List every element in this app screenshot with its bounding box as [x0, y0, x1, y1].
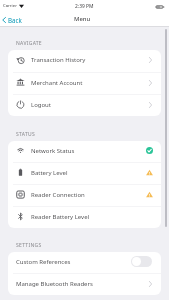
button[interactable]: Reader Battery Level [8, 207, 161, 228]
button[interactable]: Battery Level [8, 163, 161, 184]
staticText: Menu [74, 15, 91, 23]
staticText: Reader Connection [31, 191, 85, 199]
button[interactable]: Back [0, 14, 26, 26]
button[interactable]: Transaction History [8, 50, 161, 72]
button[interactable]: Network Status [8, 141, 161, 162]
staticText: Transaction History [31, 56, 86, 64]
staticText: Battery Level [31, 169, 68, 177]
staticText: Back [8, 16, 22, 24]
staticText: 2:39 PM [75, 3, 94, 10]
staticText: Carrier [3, 3, 17, 9]
staticText: Network Status [31, 147, 75, 155]
staticText: Logout [31, 101, 51, 109]
staticText: STATUS [16, 131, 36, 138]
staticText: Custom References [16, 258, 71, 266]
button[interactable]: Merchant Account [8, 73, 161, 94]
staticText: Merchant Account [31, 79, 83, 87]
button[interactable]: Reader Connection [8, 185, 161, 206]
staticText: Reader Battery Level [31, 213, 90, 221]
staticText: NAVIGATE [16, 40, 42, 47]
button[interactable]: Custom References [8, 252, 161, 273]
button[interactable]: Custom References toggle [131, 256, 152, 267]
staticText: SETTINGS [16, 242, 42, 249]
button[interactable]: Manage Bluetooth Readers [8, 274, 161, 295]
staticText: Manage Bluetooth Readers [16, 280, 93, 288]
button[interactable]: Logout [8, 95, 161, 116]
